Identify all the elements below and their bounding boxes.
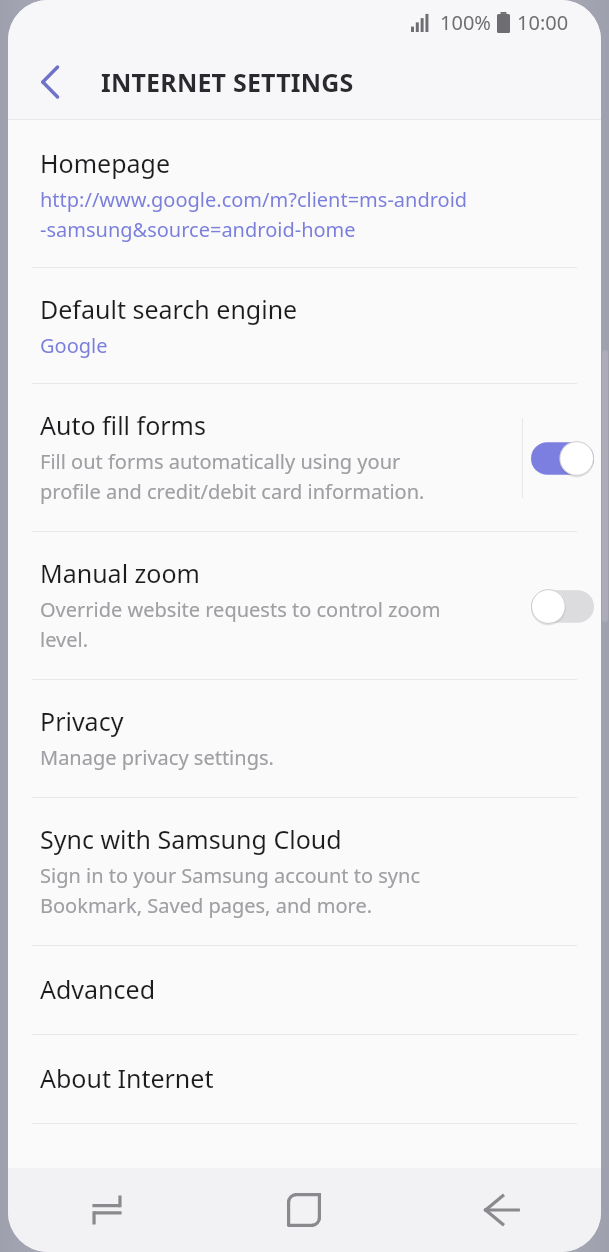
button[interactable]: Back [403,1168,601,1252]
button[interactable]: Recents [8,1168,205,1252]
staticText: Default search engine [40,292,298,326]
staticText: Fill out forms automatically using your [40,448,401,475]
button[interactable]: Manual zoom [8,532,601,679]
staticText: 100% [440,9,491,36]
staticText: 10:00 [517,9,569,36]
staticText: level. [40,626,88,653]
button[interactable]: Privacy [8,680,601,797]
button[interactable]: Auto fill forms [8,384,601,531]
button[interactable]: Advanced [8,946,601,1034]
button[interactable]: Auto fill forms on [523,423,601,493]
staticText: About Internet [40,1061,214,1095]
staticText: Override website requests to control zoo… [40,596,441,623]
staticText: Manage privacy settings. [40,744,274,771]
staticText: profile and credit/debit card informatio… [40,478,425,505]
staticText: Advanced [40,972,156,1006]
staticText: -samsung&source=android-home [40,216,356,243]
staticText: INTERNET SETTINGS [101,65,354,99]
staticText: Homepage [40,146,171,180]
staticText: Sign in to your Samsung account to sync [40,862,420,889]
button[interactable]: Home [205,1168,403,1252]
button[interactable]: Default search engine [8,268,601,383]
button[interactable]: Sync with Samsung Cloud [8,798,601,945]
staticText: Manual zoom [40,556,200,590]
staticText: Google [40,332,108,359]
button[interactable]: Back [22,54,78,110]
staticText: Privacy [40,704,124,738]
staticText: Sync with Samsung Cloud [40,822,342,856]
button[interactable]: Manual zoom off [523,571,601,641]
staticText: Auto fill forms [40,408,206,442]
button[interactable]: Homepage [8,120,601,267]
staticText: Bookmark, Saved pages, and more. [40,892,373,919]
button[interactable]: About Internet [8,1035,601,1123]
staticText: http://www.google.com/m?client=ms-androi… [40,186,468,213]
